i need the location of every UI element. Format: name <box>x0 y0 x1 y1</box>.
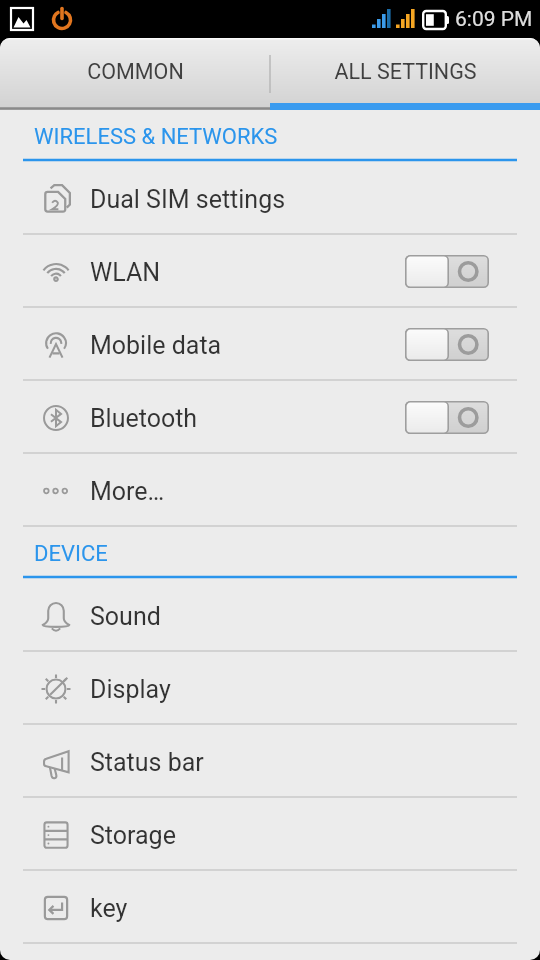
staticText: Sound <box>90 602 161 631</box>
button[interactable]: Dual SIM settings <box>0 162 540 235</box>
button[interactable]: key <box>0 871 540 944</box>
staticText: Mobile data <box>90 331 222 360</box>
staticText: WLAN <box>90 258 161 287</box>
button[interactable]: Toggle Bluetooth <box>405 401 489 434</box>
button[interactable]: Storage <box>0 798 540 871</box>
button[interactable]: WLAN <box>0 235 540 308</box>
staticText: ALL SETTINGS <box>334 59 477 84</box>
staticText: Display <box>90 675 171 704</box>
staticText: 6:09 PM <box>455 7 533 32</box>
button[interactable]: Status bar <box>0 725 540 798</box>
button[interactable]: COMMON <box>0 38 270 110</box>
staticText: COMMON <box>87 59 184 84</box>
staticText: Storage <box>90 821 176 850</box>
staticText: More… <box>90 477 165 506</box>
staticText: WIRELESS & NETWORKS <box>34 124 278 150</box>
button[interactable]: Power <box>44 0 80 38</box>
staticText: DEVICE <box>34 541 108 567</box>
button[interactable]: Display <box>0 652 540 725</box>
button[interactable]: More… <box>0 454 540 527</box>
staticText: key <box>90 894 128 923</box>
button[interactable]: Sound <box>0 579 540 652</box>
staticText: Dual SIM settings <box>90 185 286 214</box>
button[interactable]: ALL SETTINGS <box>270 38 540 110</box>
button[interactable]: Bluetooth <box>0 381 540 454</box>
button[interactable]: Mobile data <box>0 308 540 381</box>
button[interactable]: Toggle WLAN <box>405 255 489 288</box>
staticText: Status bar <box>90 748 204 777</box>
button[interactable]: Toggle Mobile data <box>405 328 489 361</box>
staticText: Bluetooth <box>90 404 198 433</box>
button[interactable]: Screenshot captured <box>0 0 44 38</box>
